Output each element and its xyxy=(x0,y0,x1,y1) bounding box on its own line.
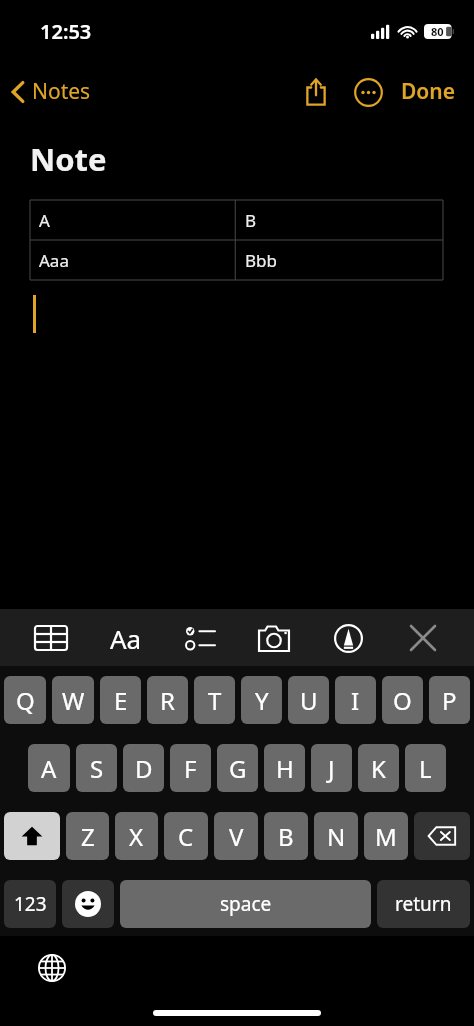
button[interactable]: Checklist xyxy=(177,615,223,661)
button[interactable]: Camera xyxy=(251,615,297,661)
button[interactable]: F xyxy=(170,744,211,792)
staticText: V xyxy=(229,820,244,853)
button[interactable]: Table xyxy=(28,615,74,661)
staticText: G xyxy=(229,752,247,785)
staticText: X xyxy=(129,820,144,853)
staticText: H xyxy=(276,752,294,785)
button[interactable]: Q xyxy=(4,676,46,724)
staticText: B xyxy=(245,209,257,232)
staticText: U xyxy=(300,684,318,717)
staticText: 80 xyxy=(431,24,444,39)
button[interactable]: N xyxy=(314,812,358,860)
button[interactable]: U xyxy=(288,676,329,724)
staticText: O xyxy=(393,684,412,717)
staticText: L xyxy=(419,752,432,785)
staticText: 123 xyxy=(14,891,47,917)
button[interactable]: T xyxy=(194,676,235,724)
button[interactable]: W xyxy=(52,676,94,724)
staticText: D xyxy=(135,752,153,785)
button[interactable]: Shift xyxy=(4,812,60,860)
button[interactable]: space xyxy=(120,880,371,928)
staticText: J xyxy=(328,752,335,785)
staticText: space xyxy=(220,891,272,917)
staticText: A xyxy=(39,209,50,232)
button[interactable]: K xyxy=(358,744,399,792)
button[interactable]: J xyxy=(311,744,352,792)
staticText: B xyxy=(278,820,294,853)
button[interactable]: P xyxy=(429,676,470,724)
staticText: 12:53 xyxy=(40,18,92,45)
staticText: P xyxy=(442,684,457,717)
button[interactable]: V xyxy=(214,812,258,860)
staticText: E xyxy=(114,684,128,717)
staticText: return xyxy=(395,891,452,917)
staticText: M xyxy=(375,820,397,853)
staticText: Q xyxy=(16,684,35,717)
button[interactable]: return xyxy=(377,880,470,928)
button[interactable]: 123 xyxy=(4,880,56,928)
button[interactable]: S xyxy=(76,744,117,792)
button[interactable]: Close keyboard xyxy=(400,615,446,661)
staticText: I xyxy=(351,684,360,717)
button[interactable]: Aaa xyxy=(30,240,443,280)
staticText: Z xyxy=(81,820,95,853)
staticText: Y xyxy=(255,684,269,717)
staticText: A xyxy=(41,752,57,785)
button[interactable]: Backspace xyxy=(414,812,470,860)
staticText: R xyxy=(160,684,175,717)
button[interactable]: B xyxy=(264,812,308,860)
staticText: S xyxy=(90,752,104,785)
staticText: Bbb xyxy=(245,249,277,272)
button[interactable]: M xyxy=(364,812,408,860)
button[interactable]: E xyxy=(100,676,141,724)
button[interactable]: Markup xyxy=(325,615,371,661)
button[interactable]: G xyxy=(217,744,258,792)
button[interactable]: I xyxy=(335,676,376,724)
staticText: N xyxy=(327,820,346,853)
staticText: Note xyxy=(30,138,107,180)
button[interactable]: Notes xyxy=(10,77,91,106)
button[interactable]: Y xyxy=(241,676,282,724)
button[interactable]: C xyxy=(164,812,208,860)
staticText: C xyxy=(178,820,194,853)
button[interactable]: Z xyxy=(66,812,109,860)
staticText: K xyxy=(371,752,386,785)
staticText: Aa xyxy=(110,621,142,656)
staticText: W xyxy=(62,684,85,717)
button[interactable]: Emoji xyxy=(62,880,114,928)
button[interactable]: A xyxy=(28,744,70,792)
button[interactable]: Done xyxy=(397,69,460,114)
button[interactable]: A xyxy=(30,200,443,240)
button[interactable]: Share xyxy=(295,71,337,113)
button[interactable]: Switch keyboard xyxy=(32,948,72,988)
staticText: Notes xyxy=(32,77,91,106)
staticText: Done xyxy=(401,77,456,106)
button[interactable]: X xyxy=(115,812,158,860)
staticText: F xyxy=(184,752,197,785)
button[interactable]: R xyxy=(147,676,188,724)
button[interactable]: More options xyxy=(347,71,389,113)
button[interactable]: O xyxy=(382,676,423,724)
staticText: T xyxy=(208,684,222,717)
button[interactable]: H xyxy=(264,744,305,792)
button[interactable]: L xyxy=(405,744,446,792)
button[interactable]: Format text xyxy=(103,615,149,661)
button[interactable]: D xyxy=(123,744,164,792)
staticText: Aaa xyxy=(39,249,69,272)
